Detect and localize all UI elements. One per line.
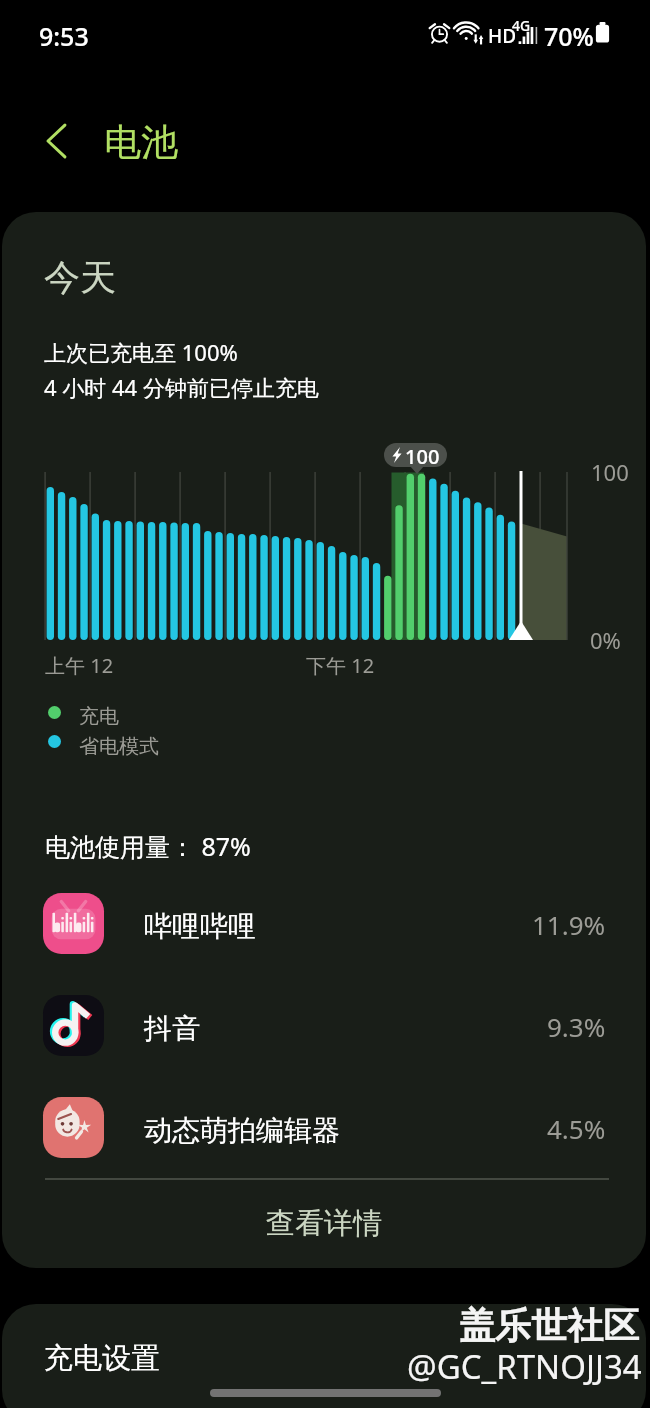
staticText: 70% xyxy=(544,19,594,53)
staticText: 盖乐世社区 xyxy=(459,1303,639,1348)
staticText: 今天 xyxy=(44,255,116,300)
staticText: 11.9% xyxy=(532,907,606,942)
staticText: HD xyxy=(488,23,517,49)
staticText: 抖音 xyxy=(144,1011,200,1046)
button[interactable]: 查看详情 xyxy=(2,1179,646,1268)
staticText: 上午 12 xyxy=(45,652,114,679)
staticText: 0% xyxy=(590,625,621,655)
staticText: 省电模式 xyxy=(79,734,159,759)
staticText: 哔哩哔哩 xyxy=(144,909,256,944)
staticText: 4.5% xyxy=(547,1111,606,1146)
button[interactable]: 充电设置 xyxy=(2,1304,646,1408)
staticText: 充电 xyxy=(79,704,119,729)
staticText: 电池 xyxy=(104,119,178,166)
button[interactable]: 哔哩哔哩 xyxy=(2,874,646,972)
staticText: 100 xyxy=(591,457,629,487)
staticText: 4G xyxy=(512,16,531,35)
staticText: 上次已充电至 100% xyxy=(44,337,238,367)
staticText: 充电设置 xyxy=(44,1340,160,1377)
button[interactable]: Back xyxy=(28,112,86,170)
staticText: 4 小时 44 分钟前已停止充电 xyxy=(44,372,319,402)
staticText: 电池使用量： 87% xyxy=(45,829,251,863)
button[interactable]: 抖音 xyxy=(2,976,646,1074)
staticText: 100 xyxy=(405,443,440,467)
staticText: 下午 12 xyxy=(306,652,375,679)
staticText: 9.3% xyxy=(547,1009,606,1044)
staticText: 查看详情 xyxy=(266,1205,382,1242)
staticText: 9:53 xyxy=(39,19,89,53)
staticText: 动态萌拍编辑器 xyxy=(144,1113,340,1148)
button[interactable]: 动态萌拍编辑器 xyxy=(2,1078,646,1176)
staticText: @GC_RTNOJJ34 xyxy=(407,1344,642,1389)
